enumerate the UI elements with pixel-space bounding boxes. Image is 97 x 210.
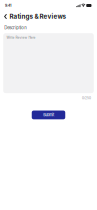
staticText: 9:41 — [5, 3, 11, 8]
staticText: 0/250 — [82, 96, 91, 100]
button[interactable]: Submit — [32, 110, 65, 119]
button[interactable]: Back — [4, 11, 66, 22]
staticText: Description — [4, 25, 27, 30]
staticText: Submit — [43, 113, 54, 117]
staticText: Ratings & Reviews — [9, 13, 66, 20]
staticText: Write Review Here — [6, 36, 35, 40]
